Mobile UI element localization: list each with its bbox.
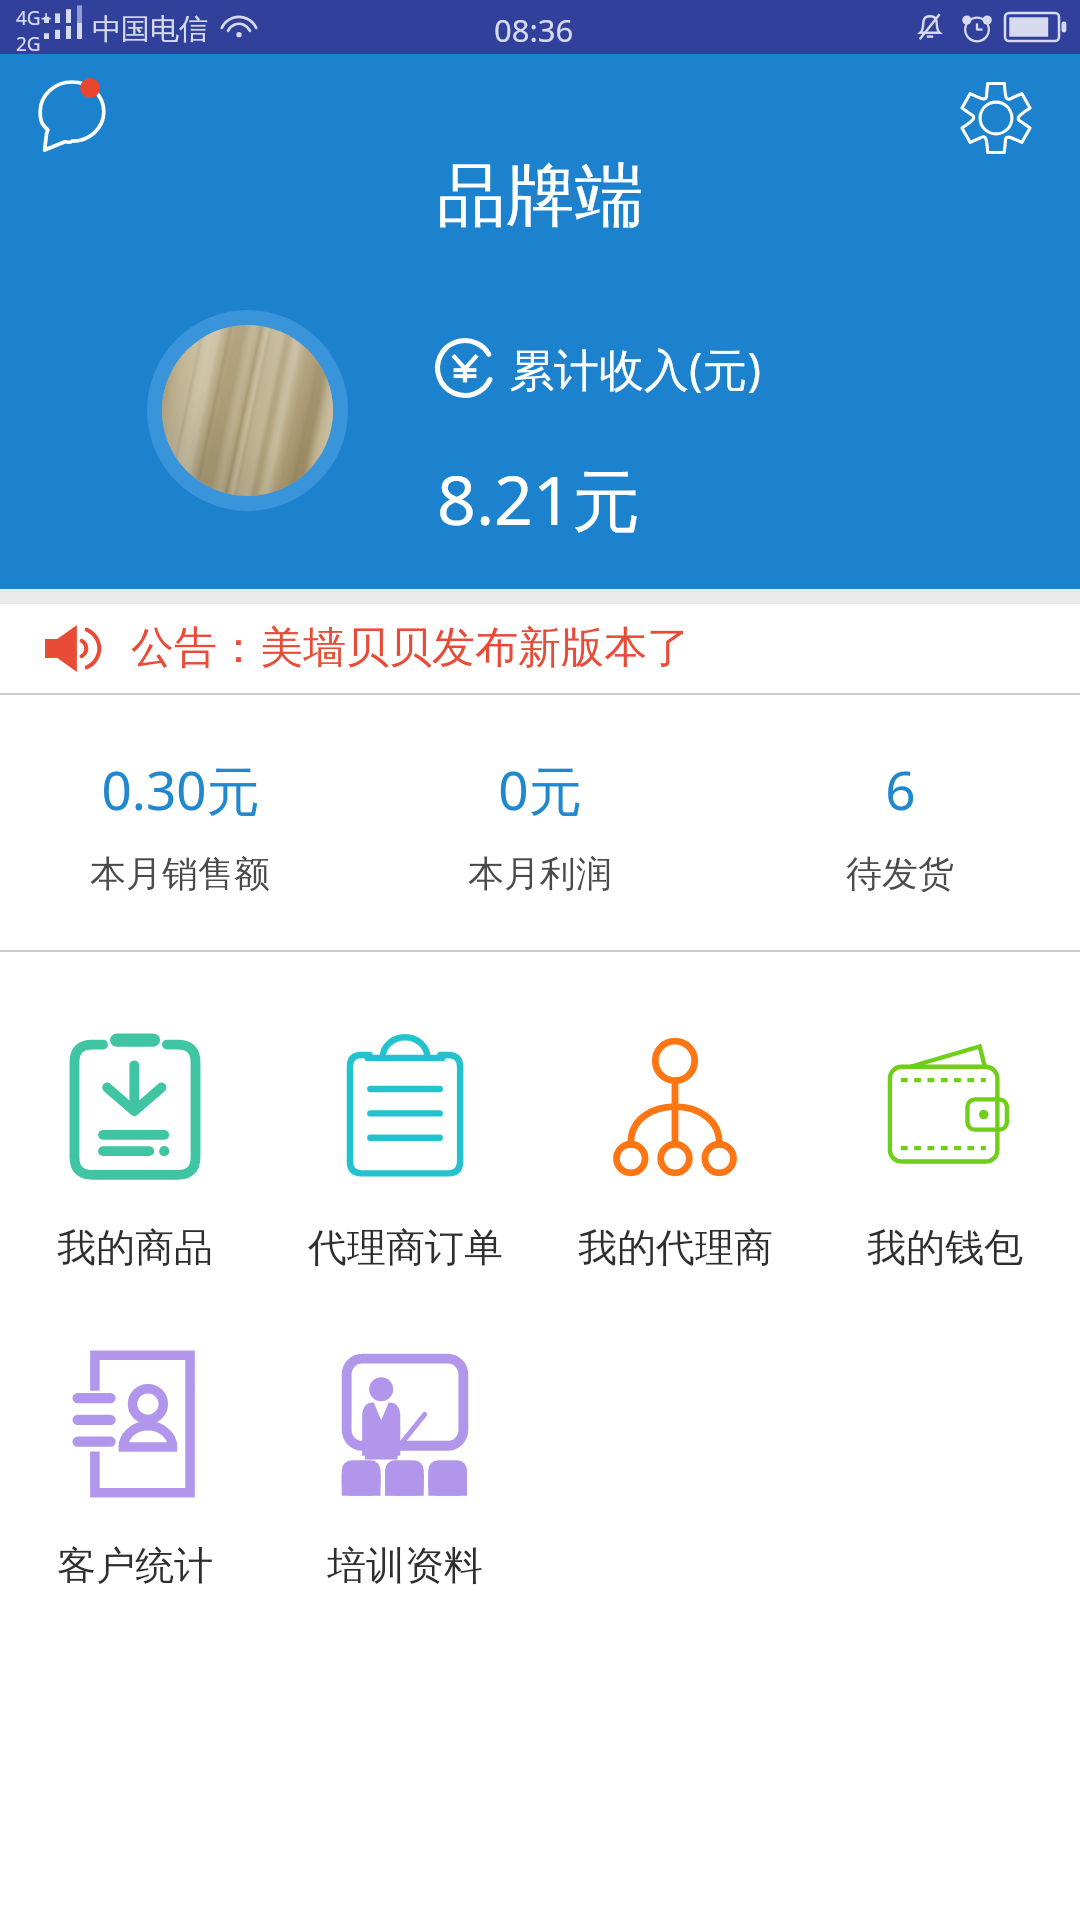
- button[interactable]: 公告：美墙贝贝发布新版本了: [0, 604, 1080, 693]
- button[interactable]: Settings: [959, 81, 1033, 155]
- staticText: 6: [885, 753, 916, 825]
- staticText: 待发货: [846, 851, 954, 896]
- button[interactable]: 0.30元: [0, 695, 360, 950]
- staticText: 4G+: [16, 5, 52, 31]
- staticText: 中国电信: [92, 11, 208, 48]
- button[interactable]: 0元: [360, 695, 720, 950]
- staticText: 培训资料: [327, 1541, 483, 1588]
- button[interactable]: 客户统计: [0, 1350, 270, 1588]
- staticText: 我的商品: [57, 1223, 213, 1270]
- staticText: 我的钱包: [867, 1223, 1023, 1270]
- staticText: 代理商订单: [308, 1223, 503, 1270]
- staticText: 累计收入(元): [509, 338, 762, 399]
- button[interactable]: 代理商订单: [270, 1032, 540, 1270]
- button[interactable]: 培训资料: [270, 1350, 540, 1588]
- button[interactable]: 6: [720, 695, 1080, 950]
- staticText: 0元: [498, 753, 582, 825]
- staticText: 8.21元: [437, 452, 640, 545]
- staticText: 公告：美墙贝贝发布新版本了: [131, 621, 690, 675]
- staticText: 0.30元: [101, 753, 260, 825]
- button[interactable]: 我的钱包: [810, 1032, 1080, 1270]
- button[interactable]: 我的代理商: [540, 1032, 810, 1270]
- button[interactable]: Profile photo: [147, 310, 348, 511]
- staticText: 本月销售额: [90, 851, 270, 896]
- staticText: 我的代理商: [578, 1223, 773, 1270]
- staticText: 品牌端: [437, 153, 644, 240]
- staticText: 2G: [16, 31, 41, 57]
- staticText: 08:36: [494, 9, 574, 51]
- staticText: 本月利润: [468, 851, 612, 896]
- button[interactable]: Messages: [22, 68, 122, 168]
- staticText: 客户统计: [57, 1541, 213, 1588]
- button[interactable]: 我的商品: [0, 1032, 270, 1270]
